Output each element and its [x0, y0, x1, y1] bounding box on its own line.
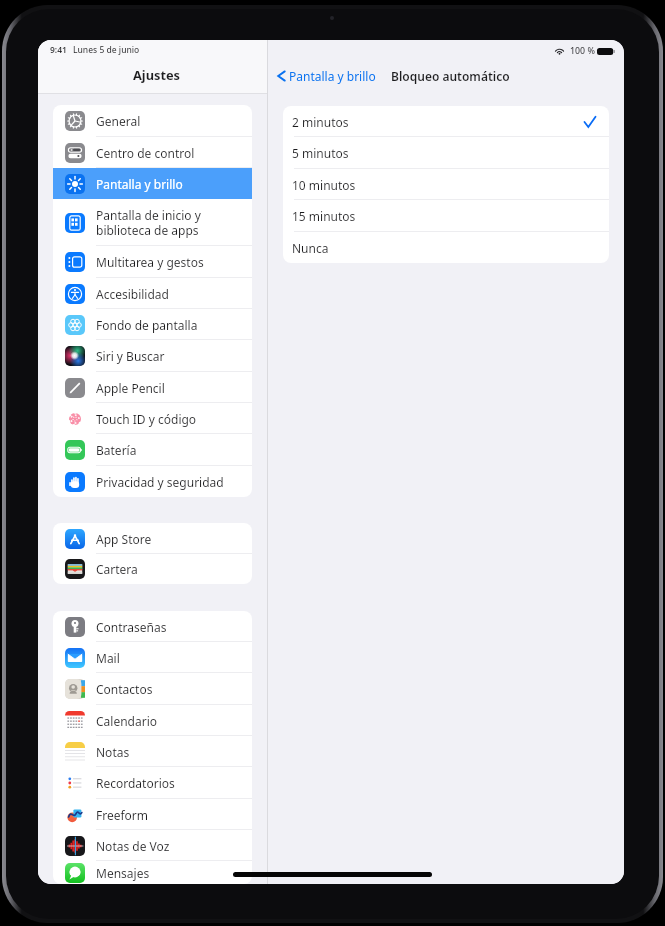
- staticText: Lunes 5 de junio: [73, 44, 140, 56]
- staticText: Centro de control: [96, 145, 195, 161]
- button[interactable]: General: [53, 105, 252, 137]
- staticText: 100 %: [570, 45, 595, 57]
- staticText: General: [96, 113, 141, 129]
- button[interactable]: Contactos: [53, 673, 252, 705]
- button[interactable]: Privacidad y seguridad: [53, 466, 252, 497]
- button[interactable]: Touch ID y código: [53, 403, 252, 434]
- staticText: Cartera: [96, 561, 138, 577]
- button[interactable]: Mensajes: [53, 861, 252, 884]
- button[interactable]: Fondo de pantalla: [53, 309, 252, 340]
- staticText: 15 minutos: [292, 208, 356, 224]
- button[interactable]: Batería: [53, 434, 252, 466]
- button[interactable]: Contraseñas: [53, 611, 252, 642]
- staticText: Contactos: [96, 681, 153, 697]
- staticText: 5 minutos: [292, 145, 349, 161]
- staticText: Siri y Buscar: [96, 348, 165, 364]
- staticText: Freeform: [96, 807, 149, 823]
- staticText: Notas: [96, 744, 130, 760]
- staticText: App Store: [96, 531, 152, 547]
- staticText: Privacidad y seguridad: [96, 474, 224, 490]
- button[interactable]: Siri y Buscar: [53, 340, 252, 372]
- staticText: 2 minutos: [292, 114, 349, 130]
- staticText: Pantalla de inicio y biblioteca de apps: [96, 207, 201, 239]
- button[interactable]: Pantalla y brillo: [277, 68, 378, 84]
- button[interactable]: 2 minutos: [283, 106, 609, 137]
- button[interactable]: 10 minutos: [283, 169, 609, 200]
- staticText: Recordatorios: [96, 775, 175, 791]
- button[interactable]: 15 minutos: [283, 200, 609, 232]
- staticText: Fondo de pantalla: [96, 317, 198, 333]
- staticText: Notas de Voz: [96, 838, 170, 854]
- button[interactable]: Notas de Voz: [53, 830, 252, 861]
- other: Batería 100%: [597, 48, 615, 55]
- staticText: Pantalla y brillo: [289, 68, 376, 84]
- staticText: Touch ID y código: [96, 411, 197, 427]
- button[interactable]: Cartera: [53, 554, 252, 584]
- button[interactable]: Centro de control: [53, 137, 252, 168]
- staticText: Nunca: [292, 240, 329, 256]
- staticText: Multitarea y gestos: [96, 254, 204, 270]
- button[interactable]: 5 minutos: [283, 137, 609, 169]
- staticText: Accesibilidad: [96, 286, 169, 302]
- button[interactable]: Accesibilidad: [53, 278, 252, 309]
- staticText: 9:41: [50, 44, 67, 56]
- staticText: Ajustes: [133, 66, 181, 83]
- staticText: Batería: [96, 442, 137, 458]
- staticText: Apple Pencil: [96, 380, 165, 396]
- staticText: 10 minutos: [292, 177, 356, 193]
- button[interactable]: Multitarea y gestos: [53, 246, 252, 278]
- other: Wi-Fi: [555, 47, 564, 55]
- button[interactable]: Mail: [53, 642, 252, 673]
- button[interactable]: Freeform: [53, 799, 252, 830]
- button[interactable]: Notas: [53, 736, 252, 767]
- button[interactable]: Pantalla y brillo: [53, 168, 252, 199]
- other: Seleccionado: [584, 116, 596, 128]
- button[interactable]: Calendario: [53, 705, 252, 736]
- button[interactable]: Apple Pencil: [53, 372, 252, 403]
- button[interactable]: App Store: [53, 523, 252, 554]
- staticText: Bloqueo automático: [391, 68, 510, 84]
- staticText: Pantalla y brillo: [96, 176, 183, 192]
- button[interactable]: Nunca: [283, 232, 609, 263]
- staticText: Contraseñas: [96, 619, 167, 635]
- button[interactable]: Recordatorios: [53, 767, 252, 799]
- button[interactable]: Pantalla de inicio y biblioteca de apps: [53, 199, 252, 246]
- staticText: Mail: [96, 650, 120, 666]
- staticText: Mensajes: [96, 865, 150, 881]
- staticText: Calendario: [96, 713, 158, 729]
